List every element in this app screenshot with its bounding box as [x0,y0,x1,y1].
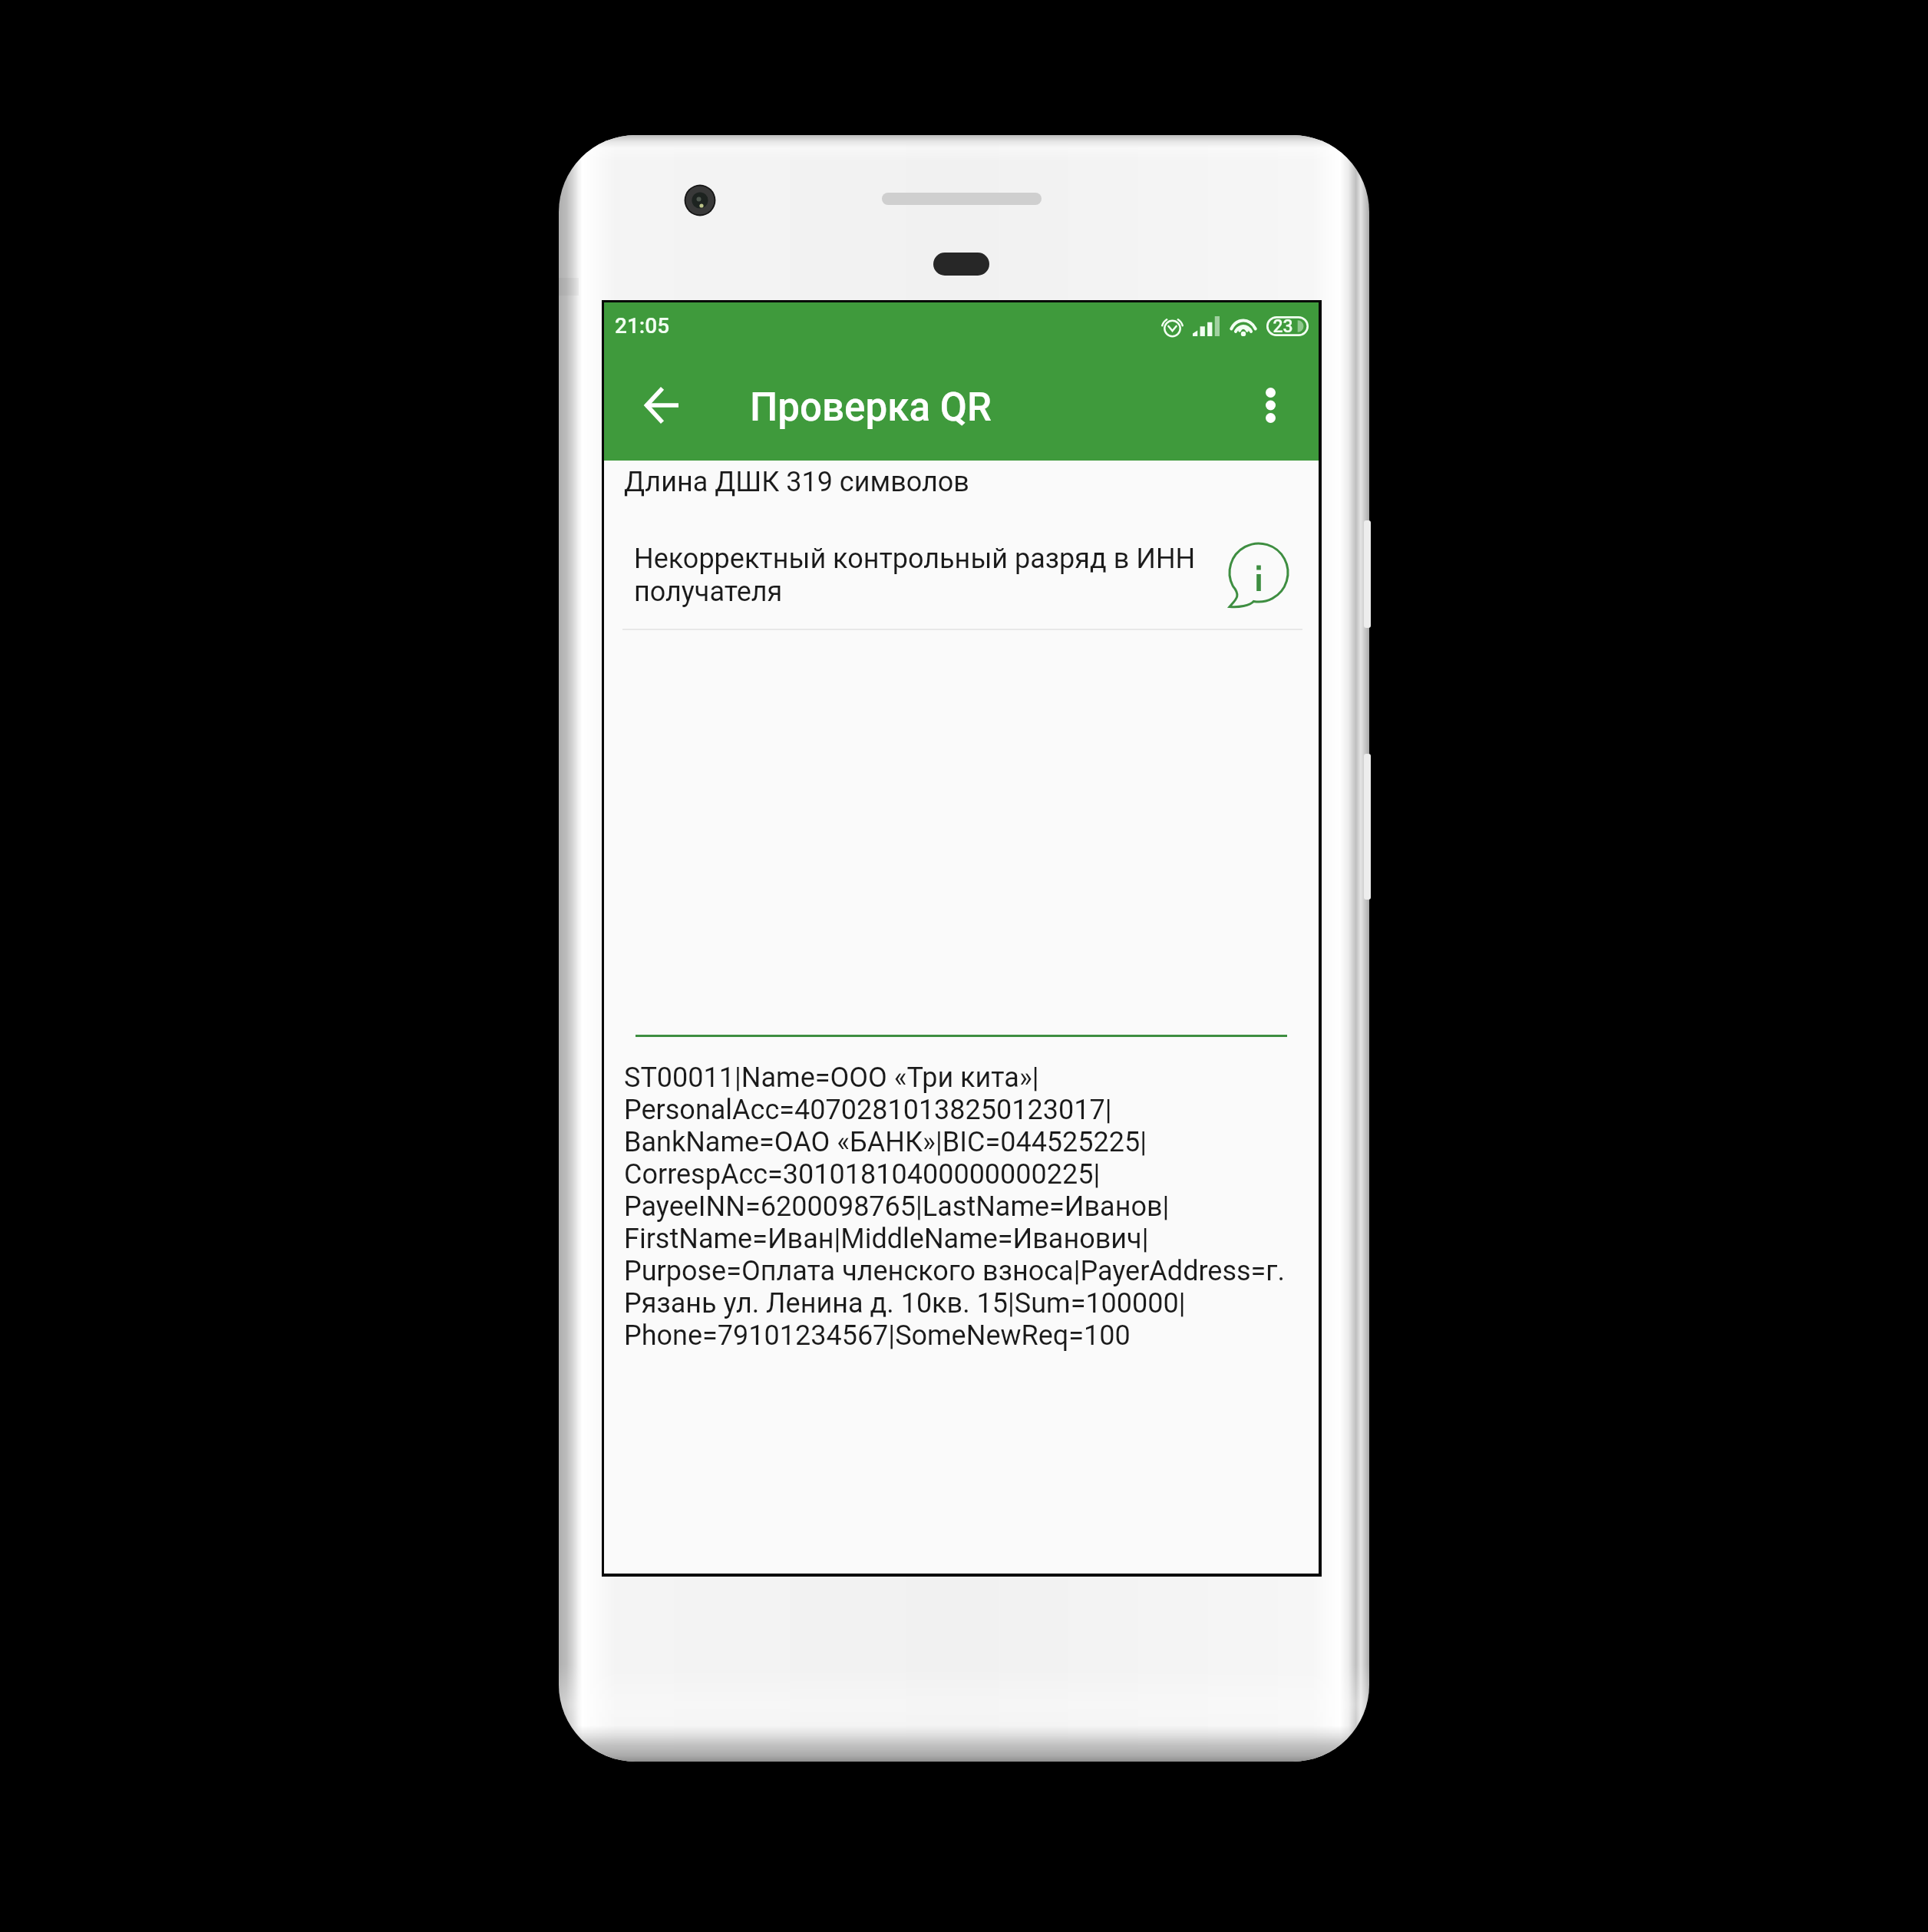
staticText: ST00011|Name=ООО «Три кита»|PersonalAcc=… [624,1062,1298,1352]
staticText: 23 [1273,316,1293,336]
button[interactable]: Info [1230,540,1294,605]
staticText: Некорректный контрольный разряд в ИНН по… [634,543,1202,608]
button[interactable]: Некорректный контрольный разряд в ИНН по… [604,517,1319,634]
button[interactable]: More options [1235,370,1306,441]
staticText: 21:05 [615,313,670,339]
staticText: Длина ДШК 319 символов [624,466,969,498]
button[interactable]: Back [626,370,697,441]
staticText: Проверка QR [750,385,992,431]
